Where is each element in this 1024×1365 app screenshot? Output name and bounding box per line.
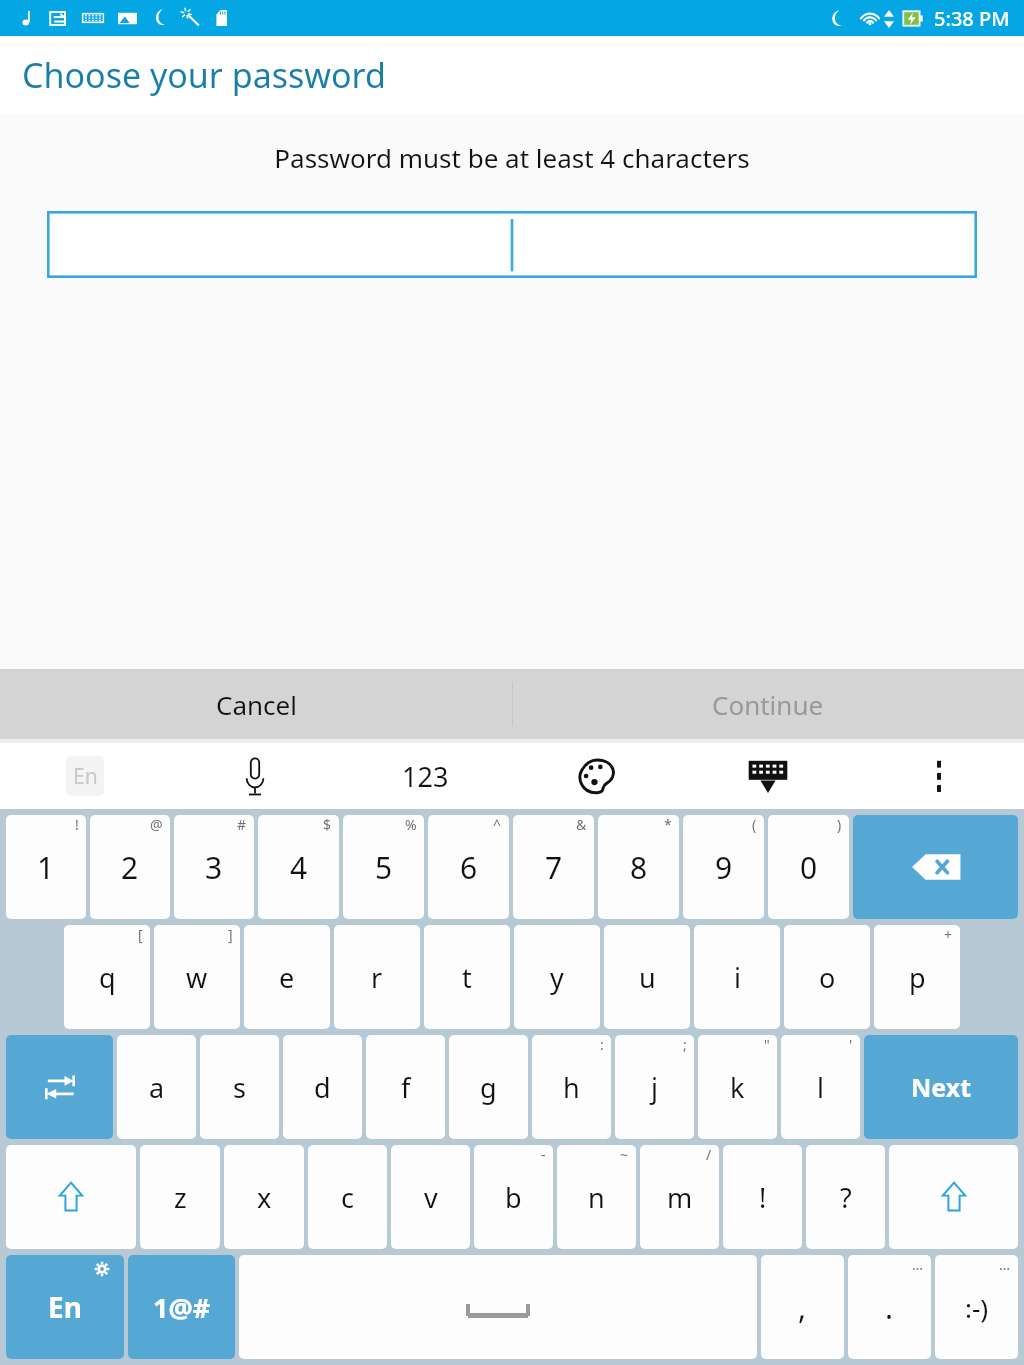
- staticText: d: [314, 1069, 331, 1106]
- staticText: #: [237, 815, 247, 834]
- staticText: 1@#: [153, 1289, 211, 1326]
- button[interactable]: Backspace: [853, 815, 1018, 919]
- button[interactable]: 6: [428, 815, 509, 919]
- button[interactable]: Theme: [511, 743, 682, 809]
- staticText: Password must be at least 4 characters: [16, 140, 1008, 175]
- button[interactable]: Tab: [6, 1035, 113, 1139]
- button[interactable]: v: [391, 1145, 470, 1249]
- button[interactable]: 9: [683, 815, 764, 919]
- button[interactable]: l: [781, 1035, 860, 1139]
- button[interactable]: d: [283, 1035, 362, 1139]
- button[interactable]: 5: [343, 815, 424, 919]
- button[interactable]: f: [366, 1035, 445, 1139]
- staticText: 3: [205, 847, 223, 888]
- button[interactable]: Shift: [889, 1145, 1018, 1249]
- staticText: [: [138, 925, 143, 944]
- staticText: 0: [800, 847, 818, 888]
- button[interactable]: Continue: [512, 669, 1024, 739]
- button[interactable]: a: [117, 1035, 196, 1139]
- button[interactable]: m: [640, 1145, 719, 1249]
- staticText: ': [849, 1035, 853, 1054]
- button[interactable]: 3: [174, 815, 254, 919]
- button[interactable]: Next: [864, 1035, 1018, 1139]
- button[interactable]: r: [334, 925, 420, 1029]
- button[interactable]: o: [784, 925, 870, 1029]
- button[interactable]: 1: [6, 815, 86, 919]
- staticText: &: [576, 815, 587, 834]
- staticText: b: [505, 1179, 522, 1216]
- staticText: 9: [715, 847, 733, 888]
- button[interactable]: b: [474, 1145, 553, 1249]
- staticText: En: [73, 762, 98, 791]
- button[interactable]: p: [874, 925, 960, 1029]
- button[interactable]: .: [848, 1255, 931, 1359]
- button[interactable]: Language settings: [6, 1255, 124, 1359]
- button[interactable]: u: [604, 925, 690, 1029]
- button[interactable]: k: [698, 1035, 777, 1139]
- staticText: l: [817, 1069, 824, 1106]
- button[interactable]: z: [140, 1145, 220, 1249]
- button[interactable]: :-): [935, 1255, 1018, 1359]
- staticText: Choose your password: [22, 52, 386, 98]
- button[interactable]: Voice input: [170, 743, 340, 809]
- staticText: 5:38 PM: [934, 5, 1010, 32]
- staticText: x: [257, 1179, 272, 1216]
- staticText: %: [405, 815, 417, 834]
- staticText: !: [75, 815, 79, 834]
- staticText: (: [752, 815, 757, 834]
- button[interactable]: j: [615, 1035, 694, 1139]
- staticText: !: [759, 1179, 767, 1216]
- button[interactable]: ,: [761, 1255, 844, 1359]
- button[interactable]: 123: [340, 743, 511, 809]
- staticText: 2: [121, 847, 139, 888]
- staticText: n: [588, 1179, 605, 1216]
- staticText: g: [480, 1069, 497, 1106]
- button[interactable]: c: [308, 1145, 387, 1249]
- button[interactable]: ?: [806, 1145, 885, 1249]
- staticText: w: [186, 959, 208, 996]
- staticText: q: [99, 959, 116, 996]
- staticText: m: [667, 1179, 693, 1216]
- staticText: r: [371, 959, 383, 996]
- button[interactable]: x: [224, 1145, 304, 1249]
- staticText: c: [341, 1179, 354, 1216]
- staticText: z: [174, 1179, 187, 1216]
- staticText: ,: [798, 1287, 807, 1328]
- staticText: v: [424, 1179, 438, 1216]
- staticText: u: [639, 959, 656, 996]
- button[interactable]: Language: [0, 743, 170, 809]
- button[interactable]: Space: [239, 1255, 757, 1359]
- button[interactable]: 4: [258, 815, 339, 919]
- button[interactable]: h: [532, 1035, 611, 1139]
- button[interactable]: 2: [90, 815, 170, 919]
- staticText: $: [323, 815, 332, 834]
- button[interactable]: 1@#: [128, 1255, 235, 1359]
- button[interactable]: s: [200, 1035, 279, 1139]
- button[interactable]: Shift: [6, 1145, 136, 1249]
- button[interactable]: q: [64, 925, 150, 1029]
- button[interactable]: [47, 211, 977, 278]
- staticText: *: [664, 815, 672, 834]
- staticText: /: [706, 1145, 712, 1164]
- staticText: 1: [37, 847, 55, 888]
- button[interactable]: Cancel: [0, 669, 512, 739]
- staticText: 4: [290, 847, 308, 888]
- staticText: t: [462, 959, 472, 996]
- button[interactable]: 0: [768, 815, 849, 919]
- button[interactable]: t: [424, 925, 510, 1029]
- button[interactable]: 8: [598, 815, 679, 919]
- button[interactable]: 7: [513, 815, 594, 919]
- button[interactable]: e: [244, 925, 330, 1029]
- staticText: @: [150, 815, 163, 834]
- button[interactable]: !: [723, 1145, 802, 1249]
- staticText: …: [999, 1255, 1011, 1274]
- button[interactable]: y: [514, 925, 600, 1029]
- button[interactable]: g: [449, 1035, 528, 1139]
- button[interactable]: w: [154, 925, 240, 1029]
- button[interactable]: i: [694, 925, 780, 1029]
- button[interactable]: More options: [853, 743, 1024, 809]
- staticText: :: [600, 1035, 604, 1054]
- button[interactable]: Hide keyboard: [682, 743, 853, 809]
- staticText: e: [279, 959, 295, 996]
- button[interactable]: n: [557, 1145, 636, 1249]
